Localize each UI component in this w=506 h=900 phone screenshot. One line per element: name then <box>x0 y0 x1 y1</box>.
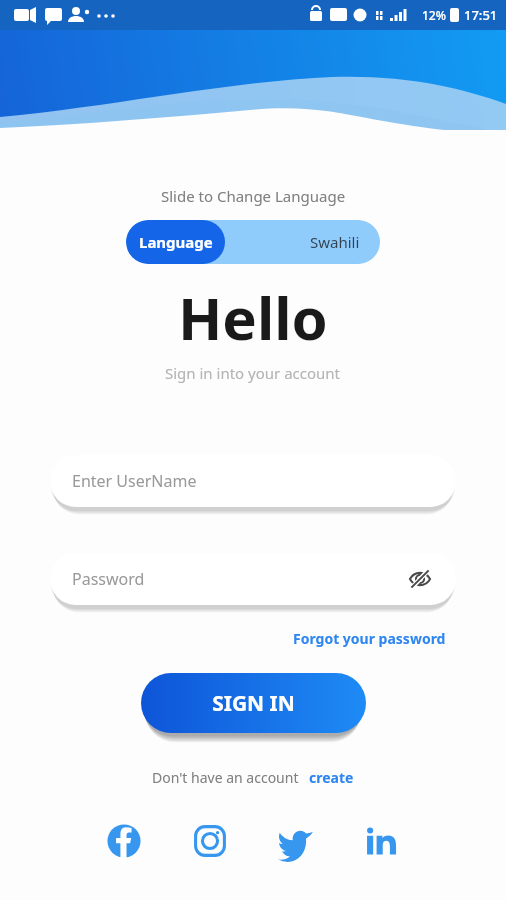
staticText: Language <box>139 232 213 252</box>
button[interactable]: Twitter <box>276 821 316 861</box>
button[interactable]: Swahili <box>126 220 380 264</box>
staticText: Enter UserName <box>72 470 434 492</box>
staticText: Sign in into your account <box>165 363 341 383</box>
staticText: Hello <box>178 278 328 357</box>
button[interactable]: Instagram <box>190 821 230 861</box>
staticText: create <box>309 768 354 787</box>
staticText: 17:51 <box>464 6 498 24</box>
button[interactable]: Enter UserName <box>50 455 456 507</box>
button[interactable]: Password <box>50 553 456 605</box>
staticText: Swahili <box>310 232 360 252</box>
staticText: Don't have an account <box>152 768 299 787</box>
staticText: 12% <box>422 7 446 23</box>
button[interactable]: LinkedIn <box>362 821 402 861</box>
staticText: Forgot your password <box>293 629 446 648</box>
button[interactable]: create <box>309 768 354 787</box>
button[interactable]: Forgot your password <box>293 629 446 648</box>
button[interactable]: Facebook <box>104 821 144 861</box>
staticText: Password <box>72 568 406 590</box>
staticText: SIGN IN <box>212 689 295 718</box>
button[interactable]: Show password <box>406 565 434 593</box>
staticText: Slide to Change Language <box>161 186 346 206</box>
button[interactable]: SIGN IN <box>141 673 366 733</box>
